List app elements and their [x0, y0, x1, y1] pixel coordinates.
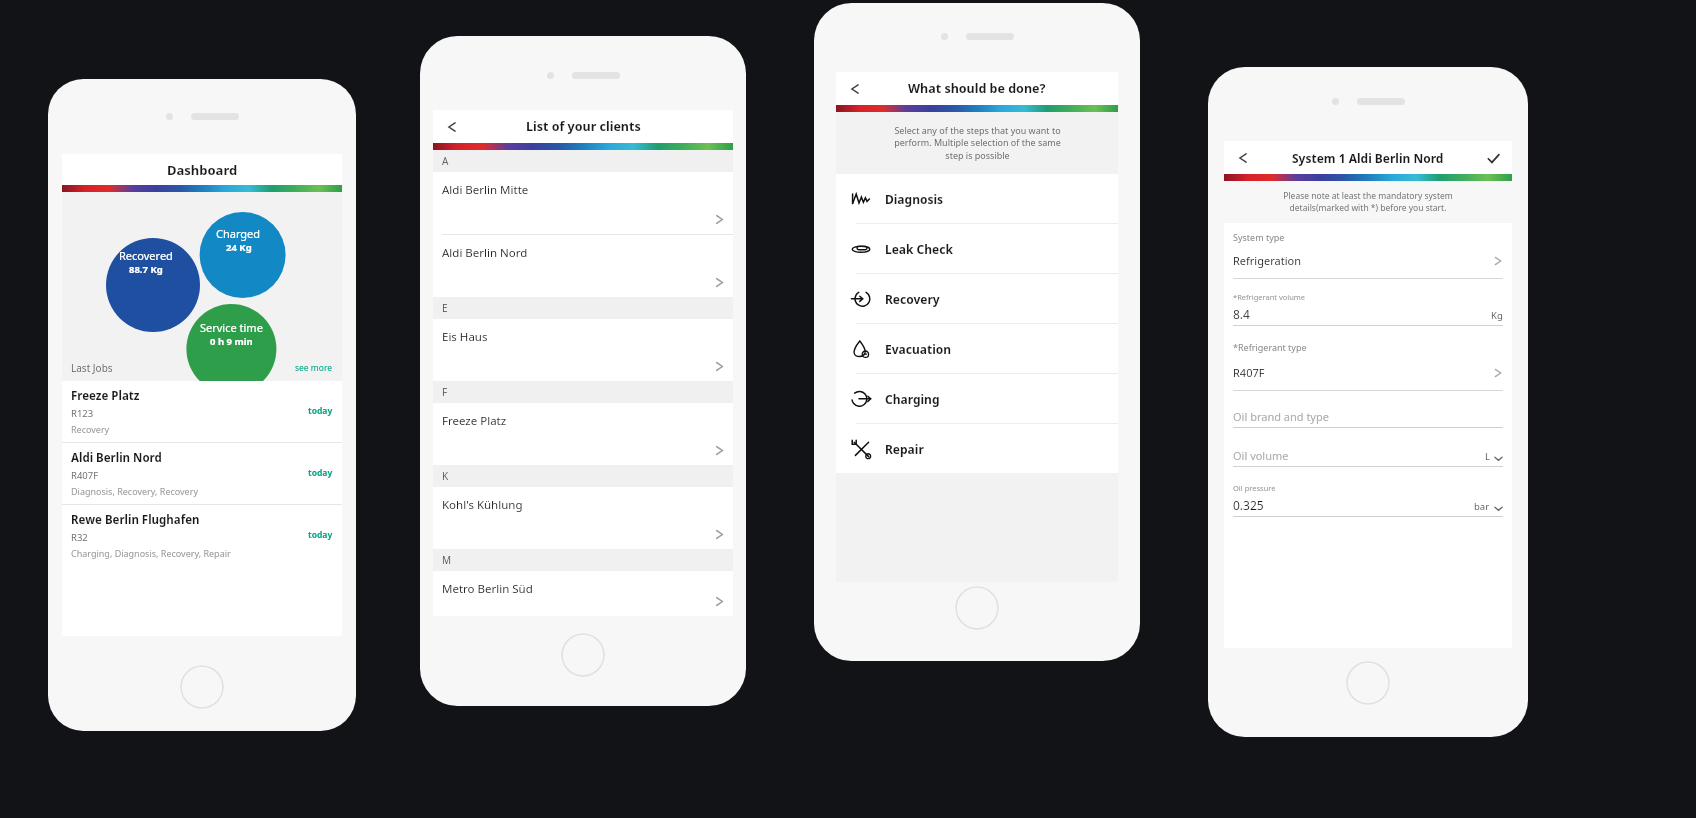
staticText: Refrigeration: [1233, 253, 1301, 268]
staticText: Metro Berlin Süd: [442, 581, 533, 597]
button[interactable]: Kohl's Kühlung: [433, 487, 733, 549]
button[interactable]: Repair: [836, 424, 1118, 473]
staticText: Dashboard: [167, 161, 238, 179]
staticText: Kohl's Kühlung: [442, 497, 523, 513]
button[interactable]: Confirm: [1482, 147, 1504, 169]
button[interactable]: Metro Berlin Süd: [433, 571, 733, 616]
staticText: R123: [71, 407, 94, 420]
staticText: Recovered: [119, 248, 173, 263]
button[interactable]: Back: [439, 114, 465, 140]
button[interactable]: Aldi Berlin Nord: [433, 235, 733, 297]
staticText: Last Jobs: [71, 361, 113, 375]
staticText: Recovery: [71, 423, 110, 435]
button[interactable]: Aldi Berlin Mitte: [433, 172, 733, 234]
staticText: Recovery: [885, 291, 940, 307]
staticText: R32: [71, 531, 88, 544]
button[interactable]: Back: [842, 76, 868, 102]
staticText: today: [308, 467, 333, 479]
staticText: Charging, Diagnosis, Recovery, Repair: [71, 547, 231, 559]
staticText: M: [442, 553, 452, 567]
staticText: Evacuation: [885, 341, 952, 357]
staticText: Charged: [216, 226, 261, 241]
staticText: R407F: [71, 469, 99, 482]
staticText: Select any of the steps that you want to…: [894, 124, 1061, 162]
staticText: K: [442, 469, 449, 483]
button[interactable]: Eis Haus: [433, 319, 733, 381]
button[interactable]: Recovery: [836, 274, 1118, 323]
staticText: Eis Haus: [442, 329, 488, 345]
button[interactable]: Aldi Berlin Nord: [62, 443, 342, 504]
staticText: List of your clients: [526, 118, 641, 135]
button[interactable]: Diagnosis: [836, 174, 1118, 223]
staticText: bar: [1474, 500, 1490, 513]
staticText: Aldi Berlin Nord: [71, 450, 162, 466]
staticText: 0.325: [1233, 497, 1264, 513]
staticText: *Refrigerant volume: [1233, 292, 1306, 302]
staticText: F: [442, 385, 448, 399]
staticText: Diagnosis, Recovery, Recovery: [71, 485, 198, 497]
staticText: Oil pressure: [1233, 483, 1276, 493]
button[interactable]: Freeze Platz: [433, 403, 733, 465]
staticText: Leak Check: [885, 241, 953, 257]
staticText: What should be done?: [908, 80, 1046, 97]
button[interactable]: System type: [1224, 223, 1512, 279]
staticText: Rewe Berlin Flughafen: [71, 512, 200, 528]
staticText: 0 h 9 min: [210, 335, 253, 348]
staticText: Service time: [200, 320, 263, 335]
staticText: E: [442, 301, 448, 315]
button[interactable]: Rewe Berlin Flughafen: [62, 505, 342, 566]
button[interactable]: Oil pressure: [1224, 483, 1512, 517]
button[interactable]: Leak Check: [836, 224, 1118, 273]
staticText: Aldi Berlin Mitte: [442, 182, 529, 198]
staticText: Diagnosis: [885, 191, 944, 207]
button[interactable]: *Refrigerant volume: [1224, 292, 1512, 326]
staticText: today: [308, 529, 333, 541]
button[interactable]: see more: [295, 362, 333, 374]
staticText: Kg: [1491, 309, 1503, 322]
staticText: *Refrigerant type: [1233, 341, 1307, 353]
staticText: Repair: [885, 441, 924, 457]
staticText: 8.4: [1233, 306, 1250, 322]
staticText: 88.7 Kg: [129, 263, 163, 276]
staticText: R407F: [1233, 365, 1265, 380]
staticText: Oil brand and type: [1233, 409, 1329, 424]
button[interactable]: *Refrigerant type: [1224, 341, 1512, 391]
staticText: Please note at least the mandatory syste…: [1283, 190, 1453, 214]
staticText: see more: [295, 362, 333, 374]
staticText: today: [308, 405, 333, 417]
staticText: L: [1485, 450, 1490, 463]
staticText: System 1 Aldi Berlin Nord: [1292, 150, 1444, 166]
button[interactable]: Charging: [836, 374, 1118, 423]
button[interactable]: Oil volume: [1224, 448, 1512, 467]
button[interactable]: Evacuation: [836, 324, 1118, 373]
staticText: A: [442, 154, 449, 168]
button[interactable]: Freeze Platz: [62, 381, 342, 442]
staticText: Oil volume: [1233, 448, 1289, 463]
button[interactable]: Oil brand and type: [1224, 409, 1512, 428]
staticText: Charging: [885, 391, 940, 407]
staticText: System type: [1233, 231, 1285, 243]
staticText: Aldi Berlin Nord: [442, 245, 528, 261]
button[interactable]: Back: [1230, 145, 1256, 171]
staticText: Freeze Platz: [71, 388, 140, 404]
staticText: Freeze Platz: [442, 413, 507, 429]
staticText: 24 Kg: [226, 241, 252, 254]
